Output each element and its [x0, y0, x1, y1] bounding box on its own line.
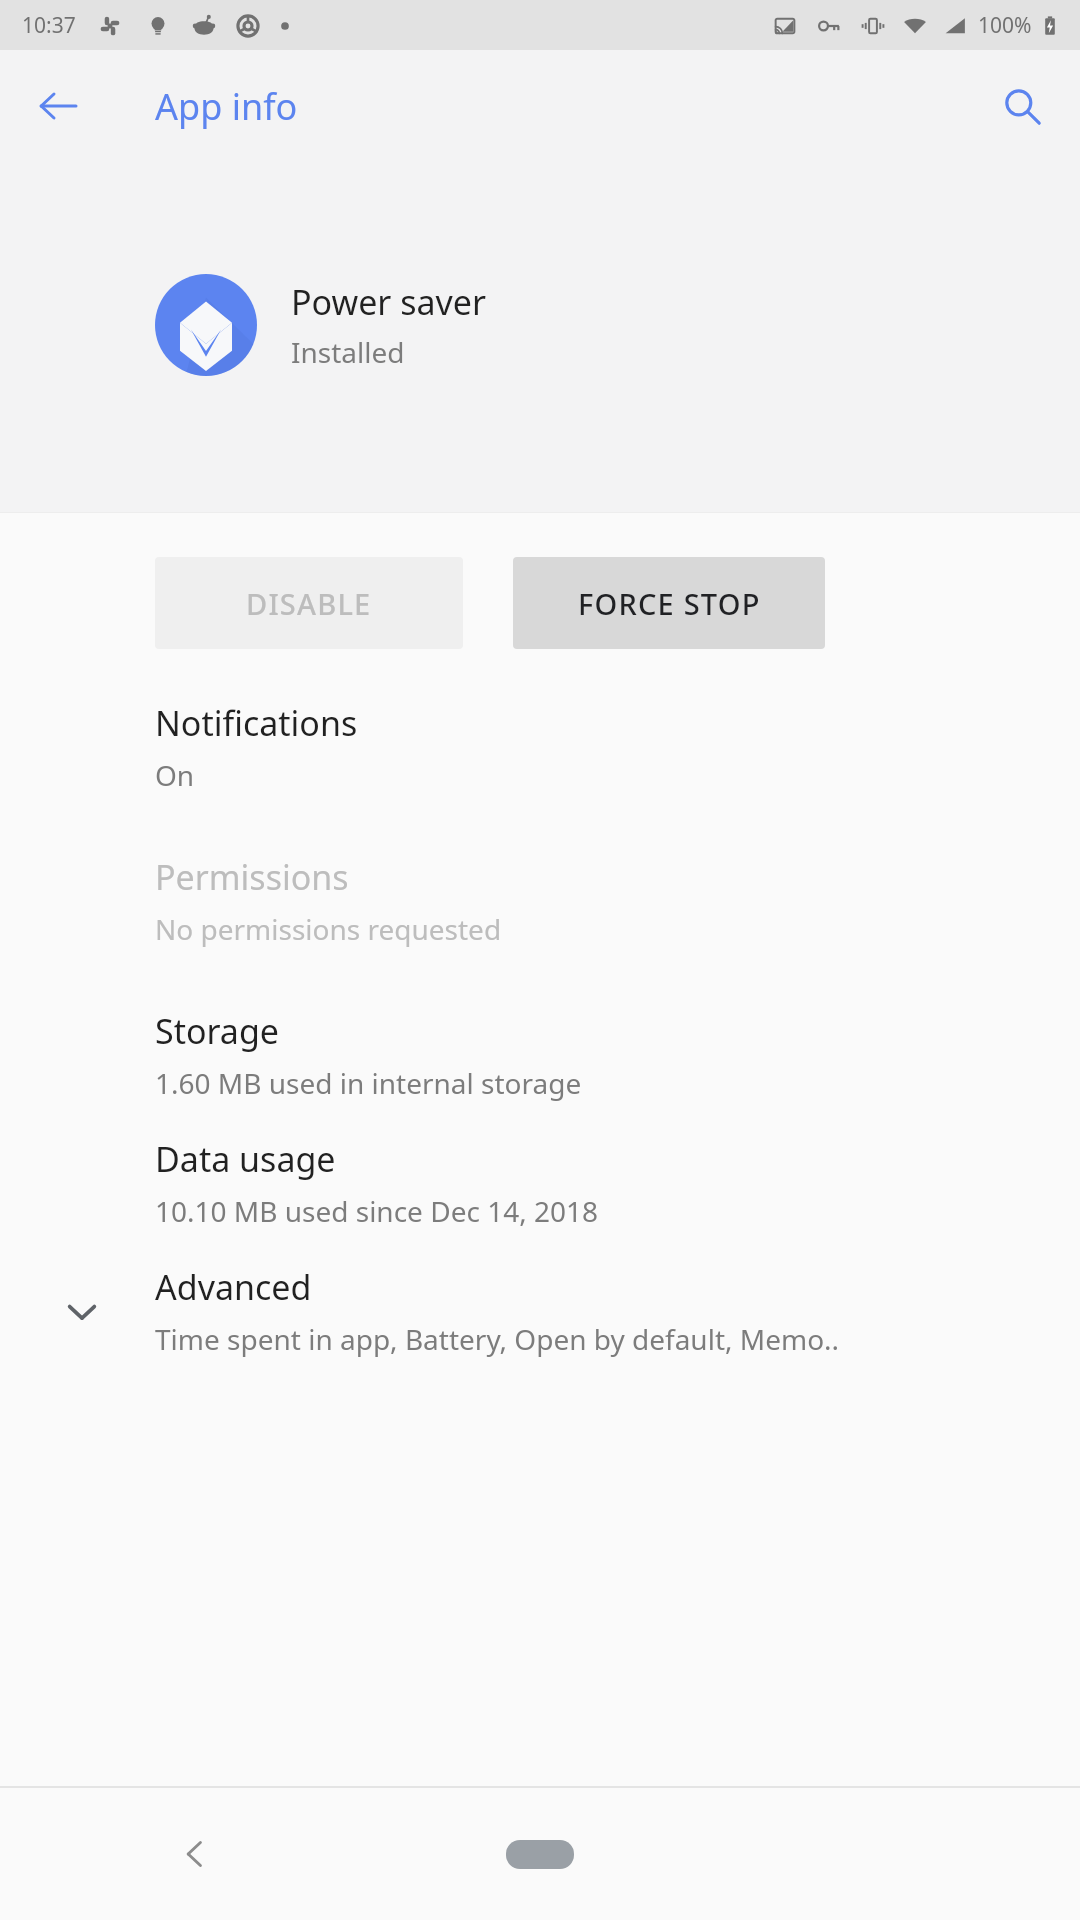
staticText: FORCE STOP: [578, 584, 761, 623]
button[interactable]: Advanced: [0, 1260, 1080, 1362]
button[interactable]: FORCE STOP: [513, 557, 825, 649]
button[interactable]: Data usage: [0, 1132, 1080, 1234]
staticText: 10.10 MB used since Dec 14, 2018: [155, 1192, 599, 1230]
button[interactable]: Permissions: [0, 850, 1080, 952]
button[interactable]: Storage: [0, 1004, 1080, 1106]
button[interactable]: Back: [22, 70, 94, 142]
staticText: Time spent in app, Battery, Open by defa…: [155, 1320, 840, 1358]
button[interactable]: Notifications: [0, 696, 1080, 798]
staticText: Advanced: [155, 1264, 312, 1310]
button[interactable]: Search: [986, 70, 1058, 142]
staticText: App info: [155, 82, 298, 131]
staticText: Data usage: [155, 1136, 336, 1182]
staticText: Permissions: [155, 854, 349, 900]
staticText: Installed: [291, 333, 405, 371]
staticText: Notifications: [155, 700, 358, 746]
staticText: 1.60 MB used in internal storage: [155, 1064, 582, 1102]
staticText: No permissions requested: [155, 910, 502, 948]
staticText: DISABLE: [246, 584, 372, 623]
staticText: 100%: [978, 11, 1032, 40]
staticText: Storage: [155, 1008, 280, 1054]
staticText: Power saver: [291, 279, 487, 325]
staticText: On: [155, 756, 195, 794]
staticText: 10:37: [22, 11, 76, 40]
button[interactable]: DISABLE: [155, 557, 463, 649]
button[interactable]: Home: [470, 1824, 610, 1884]
button[interactable]: Back: [150, 1809, 240, 1899]
